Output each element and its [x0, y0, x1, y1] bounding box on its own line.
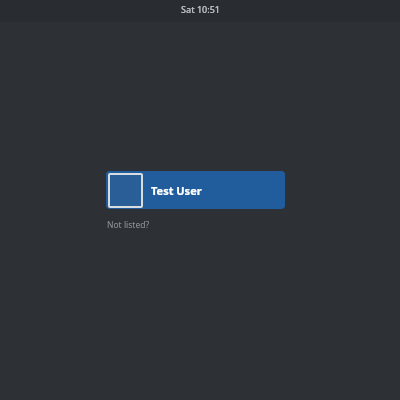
- button[interactable]: Test User: [106, 171, 285, 209]
- staticText: Test User: [151, 183, 202, 198]
- staticText: Sat 10:51: [181, 3, 220, 15]
- staticText: Not listed?: [107, 219, 150, 231]
- button[interactable]: Not listed?: [106, 218, 151, 232]
